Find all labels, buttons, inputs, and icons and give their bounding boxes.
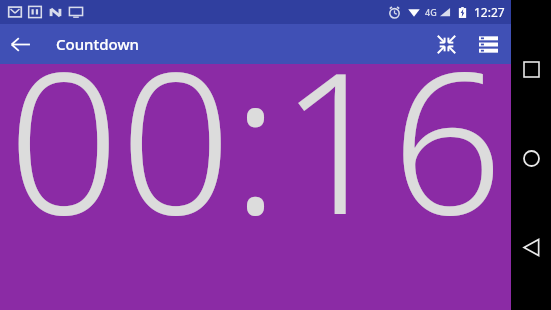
button[interactable]: 00:16 <box>0 64 511 310</box>
staticText: 4G <box>425 6 437 18</box>
staticText: Countdown <box>56 34 139 54</box>
staticText: 00:16 <box>0 4 511 250</box>
button[interactable]: Recent apps <box>514 52 548 86</box>
button[interactable]: Exit fullscreen <box>425 24 467 64</box>
button[interactable]: List <box>467 24 509 64</box>
button[interactable]: Back <box>0 24 40 64</box>
button[interactable]: Home <box>514 141 548 175</box>
button[interactable]: Back <box>514 230 548 264</box>
staticText: 12:27 <box>474 4 505 20</box>
